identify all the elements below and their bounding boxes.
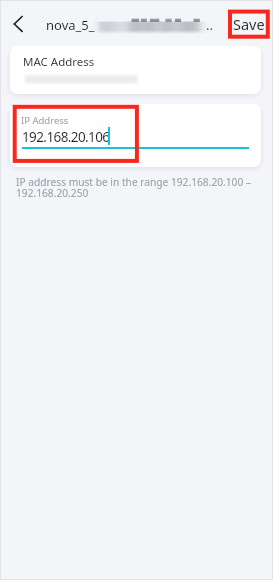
button[interactable]: Save: [233, 13, 265, 35]
staticText: IP address must be in the range 192.168.…: [16, 175, 252, 200]
staticText: MAC Address: [23, 54, 95, 70]
staticText: ..: [206, 16, 213, 34]
staticText: nova_5_: [46, 16, 95, 34]
staticText: 192.168.20.106: [22, 128, 110, 146]
staticText: Save: [233, 14, 265, 34]
button[interactable]: Back: [6, 10, 32, 38]
button[interactable]: MAC Address: [10, 46, 261, 94]
staticText: IP Address: [21, 114, 69, 127]
button[interactable]: IP Address: [10, 104, 261, 167]
